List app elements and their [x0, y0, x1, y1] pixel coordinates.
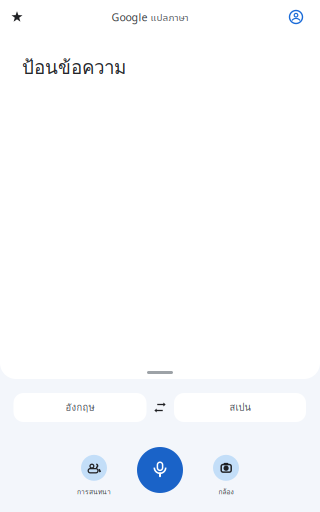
staticText: ป้อนข้อความ: [22, 53, 126, 82]
button[interactable]: อังกฤษ: [13, 393, 146, 422]
staticText: อังกฤษ: [65, 400, 94, 415]
staticText: การสนทนา: [77, 487, 111, 497]
button[interactable]: Translate by voice: [137, 447, 183, 493]
button[interactable]: สเปน: [174, 393, 306, 422]
staticText: กล้อง: [218, 487, 233, 497]
staticText: สเปน: [229, 400, 250, 415]
staticText: แปลภาษา: [150, 10, 188, 24]
button[interactable]: Saved translations: [11, 11, 23, 23]
staticText: Google: [111, 10, 147, 24]
button[interactable]: Conversation: [77, 455, 111, 497]
button[interactable]: Swap languages: [152, 400, 168, 414]
button[interactable]: ป้อนข้อความ: [0, 40, 320, 370]
button[interactable]: Camera translation: [213, 455, 239, 497]
button[interactable]: Account: [289, 10, 302, 23]
